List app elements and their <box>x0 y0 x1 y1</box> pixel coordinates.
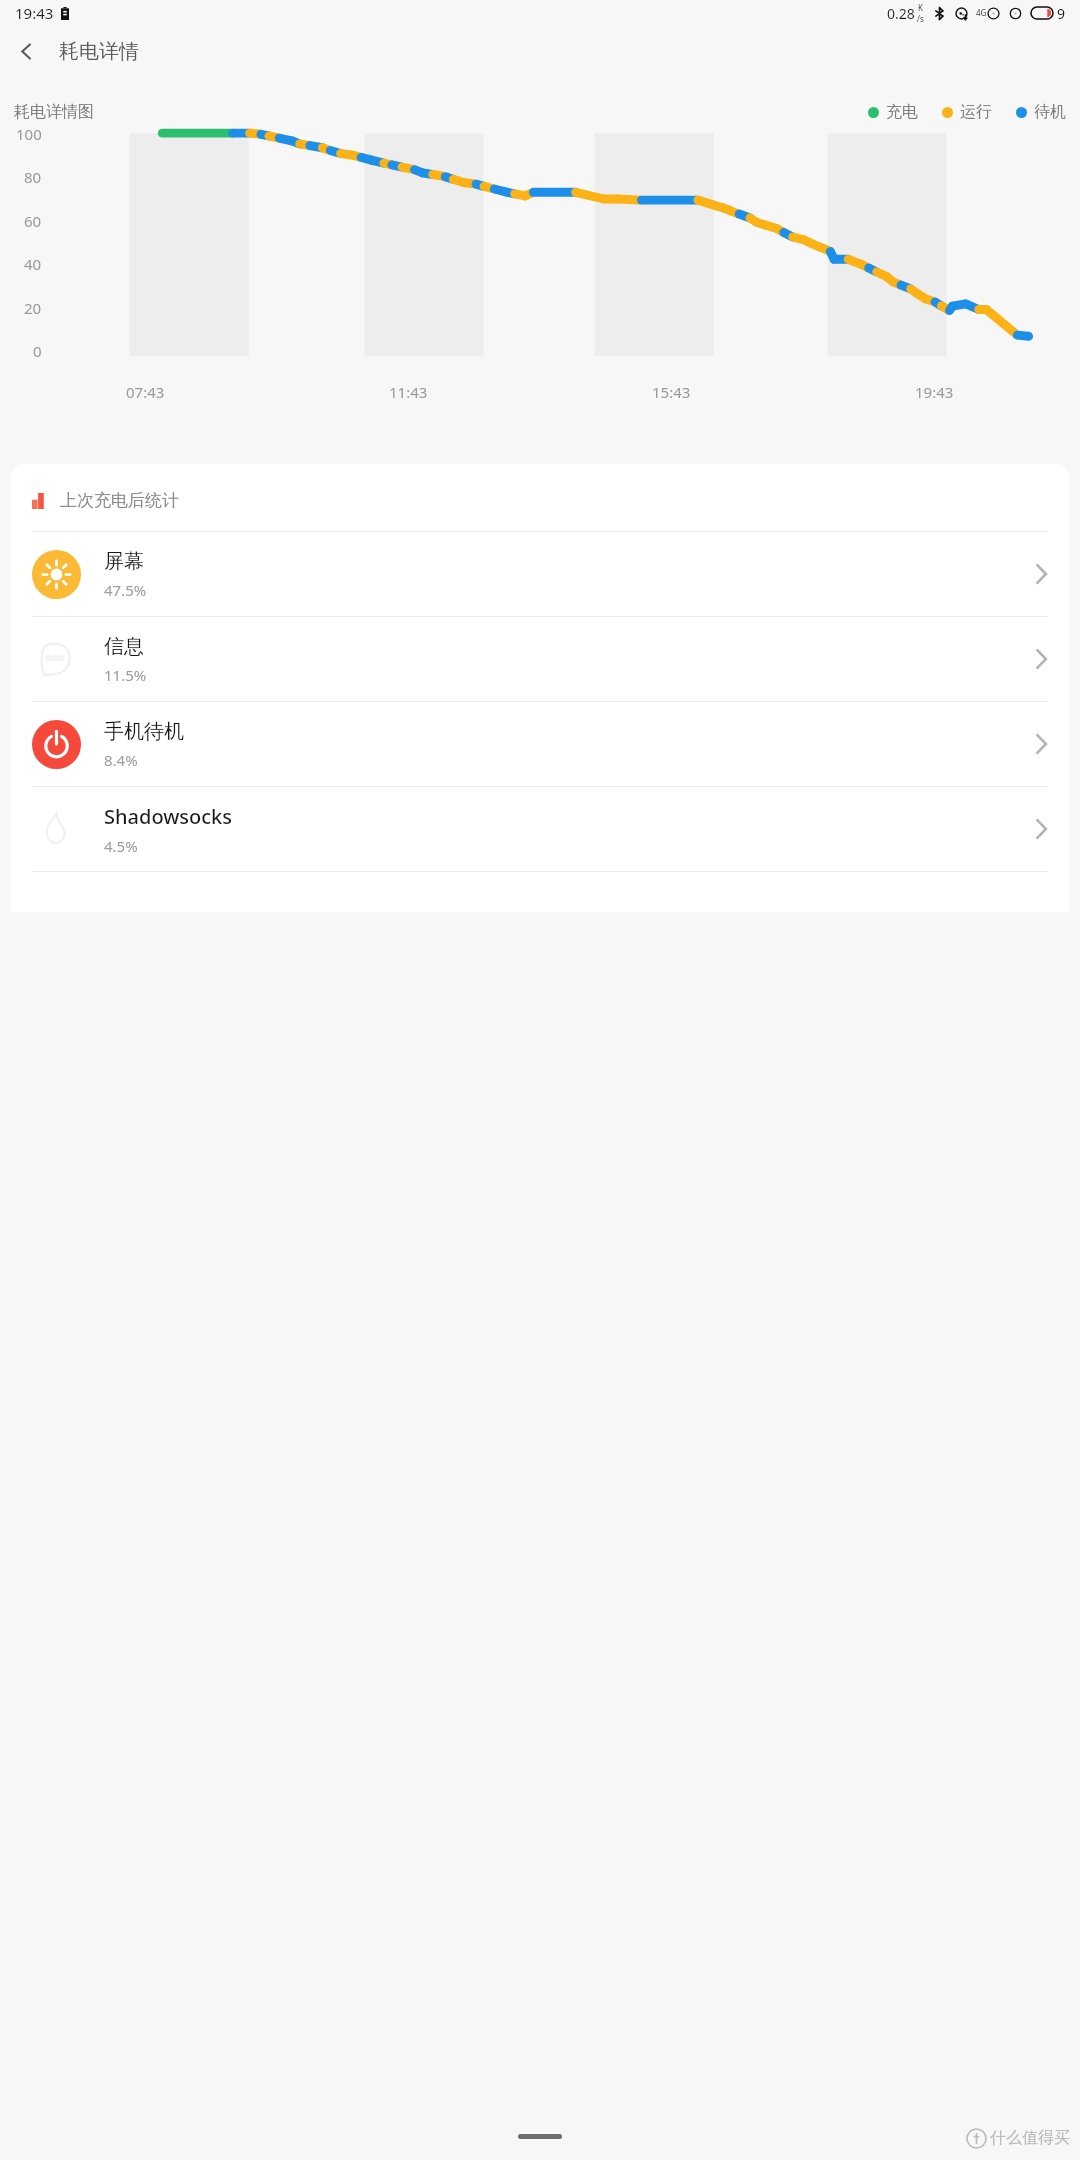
staticText: 上次充电后统计 <box>60 490 179 511</box>
staticText: 07:43 <box>126 382 165 402</box>
staticText: 11.5% <box>104 665 147 685</box>
button[interactable]: 信息 <box>11 617 1069 701</box>
staticText: 4.5% <box>104 836 138 856</box>
staticText: 运行 <box>960 102 992 122</box>
staticText: K <box>918 2 923 13</box>
button[interactable]: 手机待机 <box>11 702 1069 786</box>
staticText: 11:43 <box>389 382 428 402</box>
staticText: 20 <box>24 298 42 318</box>
staticText: 耗电详情 <box>59 39 139 64</box>
staticText: /s <box>917 13 924 24</box>
staticText: 100 <box>16 124 42 144</box>
staticText: 60 <box>24 211 42 231</box>
staticText: 什么值得买 <box>990 2128 1070 2148</box>
staticText: 0.28 <box>887 4 915 23</box>
staticText: 信息 <box>104 634 144 659</box>
staticText: 8.4% <box>104 750 138 770</box>
staticText: 80 <box>24 167 42 187</box>
staticText: 4G <box>976 7 987 18</box>
staticText: 充电 <box>886 102 918 122</box>
staticText: 手机待机 <box>104 719 184 744</box>
staticText: 屏幕 <box>104 549 144 574</box>
staticText: 40 <box>24 254 42 274</box>
button[interactable]: Back <box>4 29 48 73</box>
staticText: 9 <box>1057 4 1066 23</box>
staticText: 19:43 <box>15 3 54 23</box>
staticText: 19:43 <box>915 382 954 402</box>
staticText: 47.5% <box>104 580 147 600</box>
button[interactable]: Shadowsocks <box>11 787 1069 871</box>
staticText: 耗电详情图 <box>14 102 94 122</box>
staticText: 待机 <box>1034 102 1066 122</box>
staticText: 15:43 <box>652 382 691 402</box>
staticText: Shadowsocks <box>104 803 232 830</box>
button[interactable]: 屏幕 <box>11 532 1069 616</box>
staticText: 0 <box>33 341 42 361</box>
